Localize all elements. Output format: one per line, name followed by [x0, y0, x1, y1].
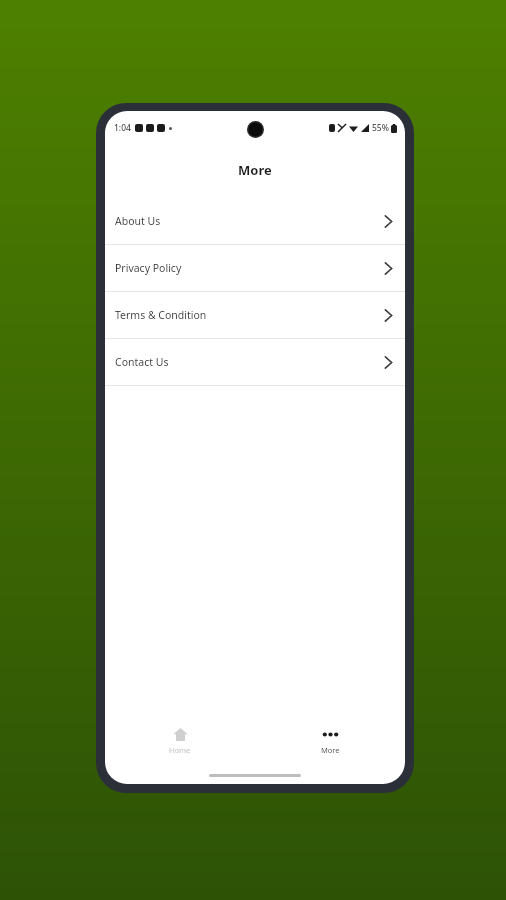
button[interactable]: More [255, 716, 405, 766]
staticText: More [321, 745, 340, 755]
staticText: Privacy Policy [115, 261, 182, 275]
staticText: More [238, 161, 272, 179]
staticText: Home [169, 745, 191, 755]
staticText: 55% [372, 122, 389, 134]
button[interactable]: Contact Us [105, 339, 405, 385]
staticText: Contact Us [115, 355, 169, 369]
staticText: About Us [115, 214, 161, 228]
button[interactable]: About Us [105, 198, 405, 244]
button[interactable]: Privacy Policy [105, 245, 405, 291]
button[interactable]: Terms & Condition [105, 292, 405, 338]
button[interactable]: Home [105, 716, 255, 766]
staticText: 1:04 [114, 122, 131, 134]
staticText: Terms & Condition [115, 308, 207, 322]
